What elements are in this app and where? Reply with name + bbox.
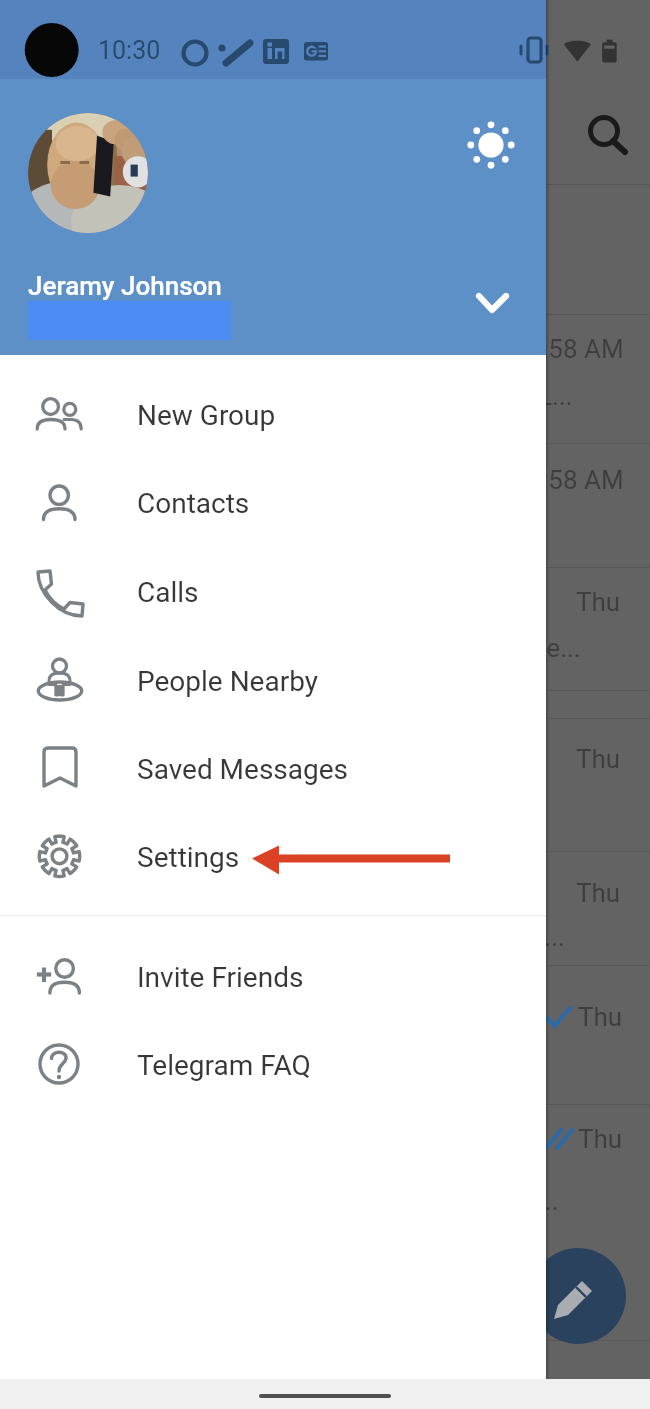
- staticText: Contacts: [137, 487, 250, 520]
- button[interactable]: Profile photo: [0, 79, 546, 355]
- staticText: L...: [538, 381, 573, 411]
- button[interactable]: Compose new message: [530, 1248, 626, 1344]
- staticText: :58 AM: [542, 465, 624, 495]
- button[interactable]: People Nearby: [0, 637, 546, 725]
- button[interactable]: Invite Friends: [0, 933, 546, 1021]
- staticText: Jeramy Johnson: [28, 271, 222, 301]
- button[interactable]: New Group: [0, 371, 546, 459]
- button[interactable]: Telegram FAQ: [0, 1021, 546, 1109]
- button[interactable]: Profile photo: [28, 113, 148, 233]
- staticText: Settings: [137, 841, 240, 874]
- button[interactable]: Saved Messages: [0, 725, 546, 813]
- button[interactable]: Search: [584, 112, 632, 160]
- button[interactable]: Contacts: [0, 459, 546, 547]
- staticText: ne...: [532, 633, 581, 663]
- staticText: Invite Friends: [137, 961, 304, 994]
- button[interactable]: Toggle night mode: [457, 111, 525, 179]
- button[interactable]: Settings: [0, 813, 546, 901]
- staticText: 10:30: [98, 36, 161, 65]
- staticText: Thu: [576, 744, 621, 774]
- staticText: Saved Messages: [137, 753, 349, 786]
- staticText: l...: [538, 922, 565, 952]
- button[interactable]: Expand accounts: [462, 266, 522, 326]
- staticText: Thu: [576, 878, 621, 908]
- staticText: New Group: [137, 399, 276, 432]
- staticText: :58 AM: [542, 334, 624, 364]
- staticText: Telegram FAQ: [137, 1049, 311, 1082]
- staticText: Thu: [578, 1002, 623, 1032]
- staticText: ...: [538, 1186, 559, 1216]
- staticText: Thu: [578, 1124, 623, 1154]
- staticText: Calls: [137, 576, 199, 609]
- staticText: People Nearby: [137, 665, 318, 698]
- button[interactable]: Calls: [0, 548, 546, 636]
- staticText: Thu: [576, 587, 621, 617]
